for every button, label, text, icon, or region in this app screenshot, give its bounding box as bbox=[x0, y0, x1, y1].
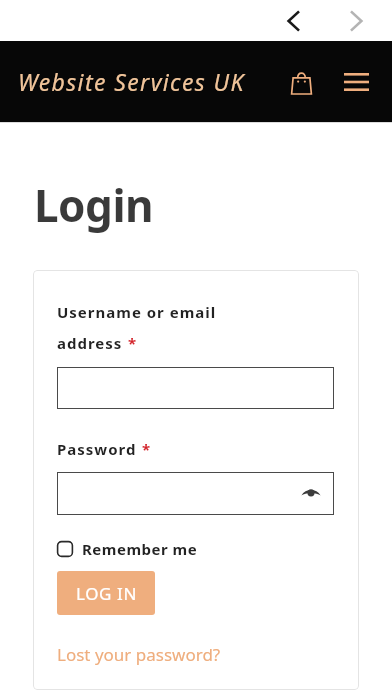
staticText: LOG IN bbox=[76, 582, 137, 605]
button[interactable]: Website Services UK bbox=[18, 66, 245, 97]
staticText: address bbox=[57, 333, 123, 353]
button[interactable]: Back bbox=[272, 3, 316, 39]
button[interactable]: Forward bbox=[334, 3, 378, 39]
staticText: Login bbox=[34, 175, 154, 235]
button[interactable]: Show password bbox=[57, 472, 334, 515]
button[interactable]: LOG IN bbox=[57, 571, 155, 615]
staticText: Password bbox=[57, 439, 137, 459]
button[interactable]: Lost your password? bbox=[57, 643, 221, 666]
button[interactable]: Remember me bbox=[57, 539, 198, 559]
button[interactable]: Menu bbox=[336, 62, 376, 102]
button[interactable]: Cart bbox=[282, 63, 320, 101]
staticText: Remember me bbox=[82, 539, 198, 559]
button[interactable]: Show password bbox=[296, 479, 326, 509]
button[interactable] bbox=[57, 367, 334, 409]
staticText: * bbox=[128, 333, 137, 353]
staticText: Username or email bbox=[57, 302, 217, 322]
staticText: * bbox=[142, 439, 151, 459]
